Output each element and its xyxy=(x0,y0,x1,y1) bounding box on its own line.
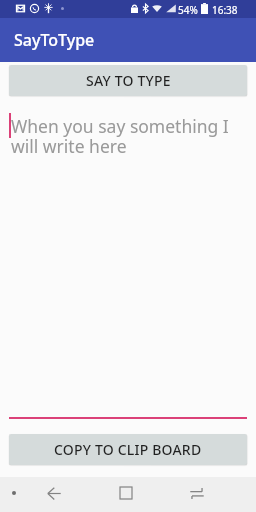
staticText: SAY TO TYPE xyxy=(86,71,171,90)
button[interactable]: Back xyxy=(42,481,66,505)
staticText: SayToType xyxy=(14,29,95,51)
button[interactable]: SAY TO TYPE xyxy=(9,65,247,96)
staticText: COPY TO CLIP BOARD xyxy=(54,440,202,459)
staticText: 16:38 xyxy=(212,3,238,17)
button[interactable]: Home xyxy=(115,482,137,504)
button[interactable]: COPY TO CLIP BOARD xyxy=(9,434,247,465)
staticText: 54% xyxy=(178,3,198,17)
button[interactable]: Menu xyxy=(3,482,25,504)
button[interactable]: Recents xyxy=(185,481,209,505)
staticText: When you say something I will write here xyxy=(11,114,235,159)
